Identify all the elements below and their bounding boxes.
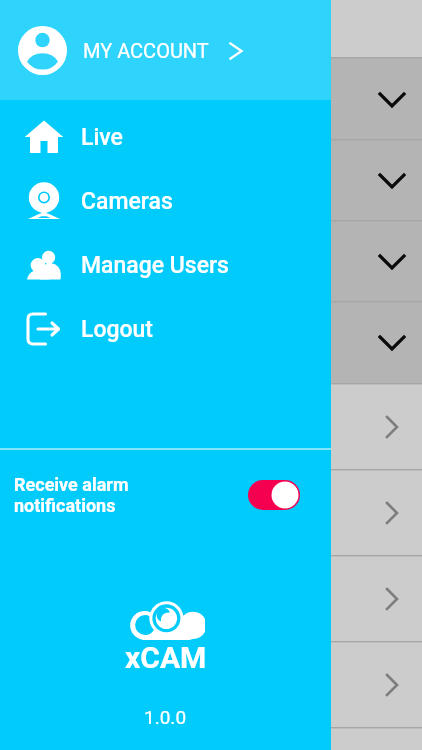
staticText: Logout [81, 316, 154, 343]
staticText: 1.0.0 [144, 706, 187, 728]
staticText: MY ACCOUNT [83, 39, 209, 62]
staticText: Manage Users [81, 252, 229, 279]
staticText: Live [81, 124, 123, 151]
button[interactable]: Receive alarm notifications [14, 455, 300, 535]
staticText: Cameras [81, 188, 173, 215]
button[interactable]: Manage Users [24, 233, 331, 297]
button[interactable]: Cameras [24, 169, 331, 233]
button[interactable]: Logout [24, 297, 331, 361]
button[interactable]: MY ACCOUNT [0, 0, 331, 100]
button[interactable]: Receive alarm notifications [248, 480, 300, 510]
staticText: xCAM [125, 640, 207, 675]
button[interactable]: Live [24, 105, 331, 169]
staticText: Receive alarm notifications [14, 474, 129, 517]
